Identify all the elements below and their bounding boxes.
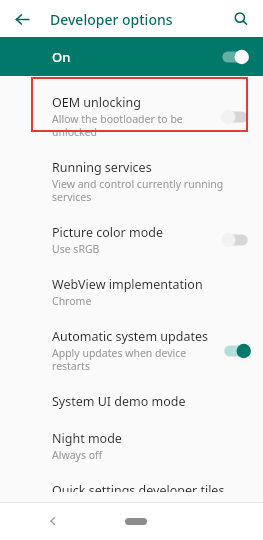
staticText: WebView implementation <box>52 276 203 293</box>
staticText: On <box>52 48 71 66</box>
button[interactable]: On <box>0 38 263 76</box>
staticText: Chrome <box>52 294 92 308</box>
button[interactable]: Running services <box>0 149 263 214</box>
button[interactable]: WebView implementation <box>0 266 263 318</box>
staticText: Always off <box>52 448 103 462</box>
staticText: View and control currently running servi… <box>52 177 251 204</box>
staticText: Running services <box>52 159 152 176</box>
staticText: Apply updates when device restarts <box>52 346 187 373</box>
button[interactable]: Home <box>116 511 156 531</box>
staticText: Picture color mode <box>52 224 163 241</box>
button[interactable]: Quick settings developer tiles <box>0 472 263 502</box>
button[interactable]: Back <box>41 509 65 533</box>
button[interactable]: Toggle on <box>219 48 249 66</box>
button[interactable]: System UI demo mode <box>0 383 263 420</box>
staticText: Allow the bootloader to be unlocked <box>52 112 183 139</box>
button[interactable]: Back <box>10 7 34 31</box>
button[interactable]: Search <box>229 7 253 31</box>
staticText: Night mode <box>52 430 122 447</box>
button[interactable]: Toggle on <box>221 342 251 360</box>
staticText: Automatic system updates <box>52 328 208 345</box>
button[interactable]: Night mode <box>0 420 263 472</box>
button[interactable]: OEM unlocking <box>0 84 263 149</box>
staticText: System UI demo mode <box>52 393 186 410</box>
staticText: Use sRGB <box>52 242 100 256</box>
button[interactable]: Picture color mode <box>0 214 263 266</box>
staticText: OEM unlocking <box>52 94 141 111</box>
button[interactable]: Toggle off <box>221 108 251 126</box>
staticText: Developer options <box>50 10 173 29</box>
staticText: Quick settings developer tiles <box>52 482 225 492</box>
button[interactable]: Automatic system updates <box>0 318 263 383</box>
button[interactable]: Toggle off <box>221 231 251 249</box>
